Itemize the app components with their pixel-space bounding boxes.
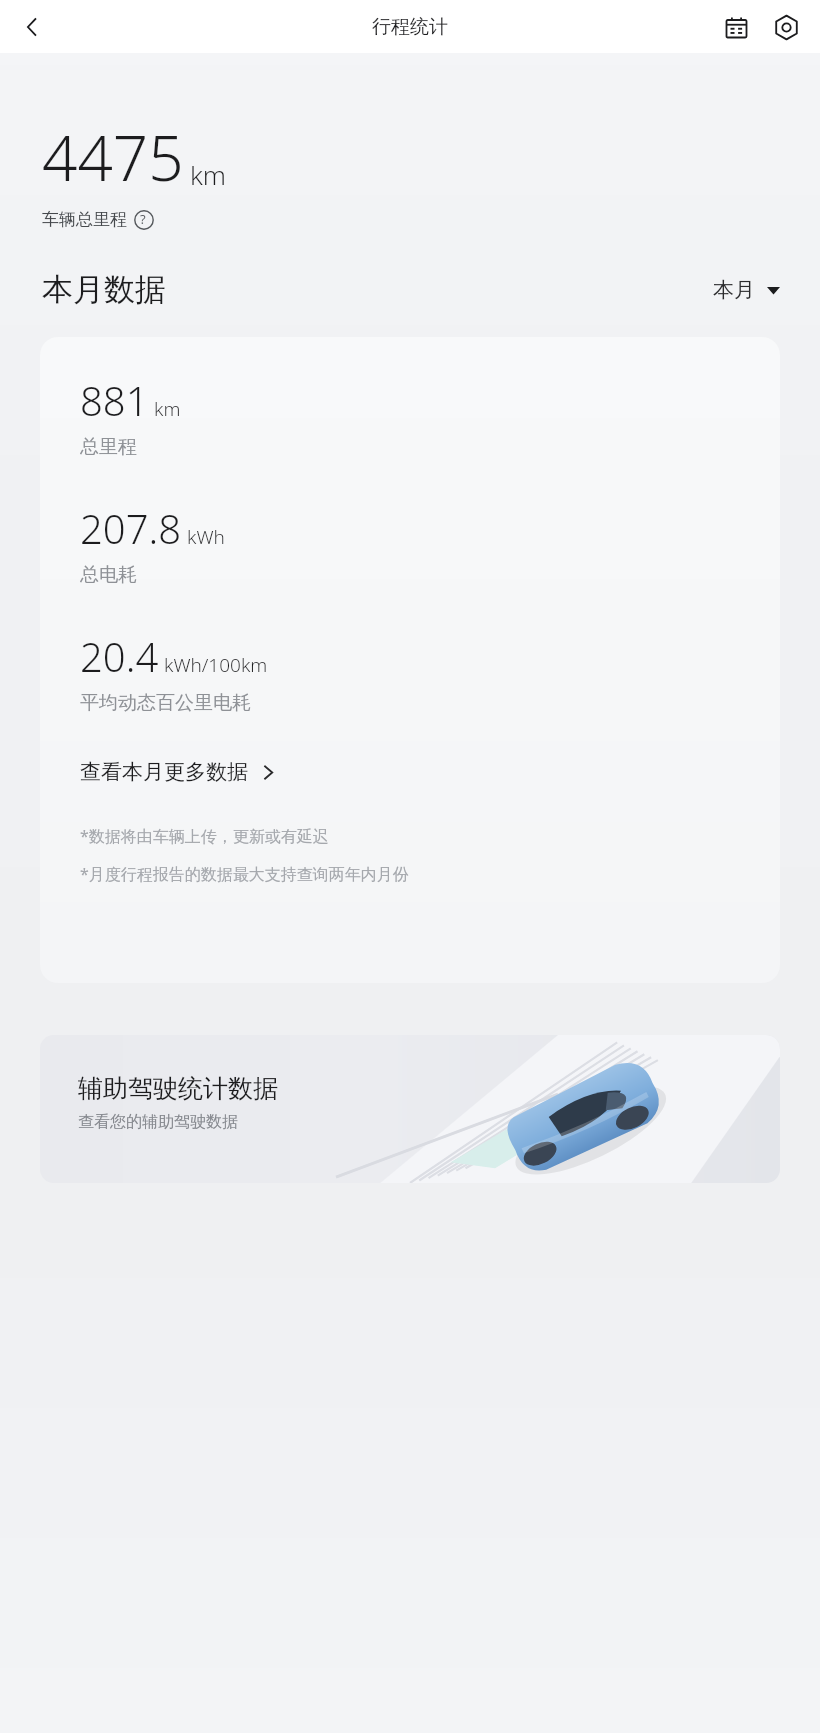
staticText: *数据将由车辆上传，更新或有延迟 — [80, 825, 329, 847]
staticText: 207.8 — [80, 501, 182, 555]
button[interactable]: Back — [8, 3, 56, 51]
button[interactable]: 查看本月更多数据 — [80, 759, 277, 785]
staticText: 查看本月更多数据 — [80, 759, 248, 785]
staticText: 平均动态百公里电耗 — [80, 691, 251, 715]
staticText: kWh — [187, 524, 225, 550]
staticText: 辅助驾驶统计数据 — [78, 1073, 278, 1104]
staticText: 本月 — [713, 277, 755, 303]
staticText: 总电耗 — [80, 563, 137, 587]
button[interactable]: Calendar — [712, 3, 760, 51]
staticText: 本月数据 — [42, 270, 166, 309]
staticText: 20.4 — [80, 629, 159, 683]
staticText: 车辆总里程 — [42, 209, 127, 230]
staticText: ? — [140, 210, 146, 228]
button[interactable]: Settings — [762, 3, 810, 51]
staticText: kWh/100km — [164, 652, 268, 678]
button[interactable]: 车辆总里程 — [42, 209, 160, 230]
staticText: 查看您的辅助驾驶数据 — [78, 1112, 238, 1132]
button[interactable]: 辅助驾驶统计数据 — [40, 1035, 780, 1183]
staticText: 行程统计 — [372, 15, 448, 39]
button[interactable]: 本月 — [709, 273, 784, 307]
button[interactable]: 881 — [40, 337, 780, 983]
staticText: km — [190, 157, 227, 192]
staticText: km — [154, 396, 181, 422]
staticText: *月度行程报告的数据最大支持查询两年内月份 — [80, 863, 409, 885]
staticText: 4475 — [42, 115, 184, 199]
staticText: 881 — [80, 373, 149, 427]
staticText: 总里程 — [80, 435, 137, 459]
